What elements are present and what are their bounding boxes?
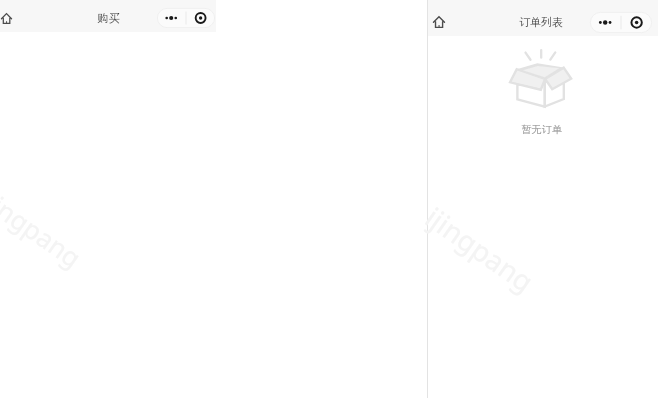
staticText: 暂无订单: [521, 123, 562, 136]
button[interactable]: Close mini program: [186, 8, 215, 28]
button[interactable]: More options: [157, 8, 186, 28]
staticText: ijingpang: [418, 198, 542, 300]
button[interactable]: 暂无订单: [426, 122, 656, 137]
button[interactable]: Close mini program: [621, 12, 652, 33]
staticText: 订单列表: [519, 16, 563, 30]
button[interactable]: More options: [590, 12, 621, 33]
button[interactable]: Home: [433, 16, 445, 28]
button[interactable]: Home: [1, 13, 12, 24]
staticText: 购买: [97, 11, 120, 25]
